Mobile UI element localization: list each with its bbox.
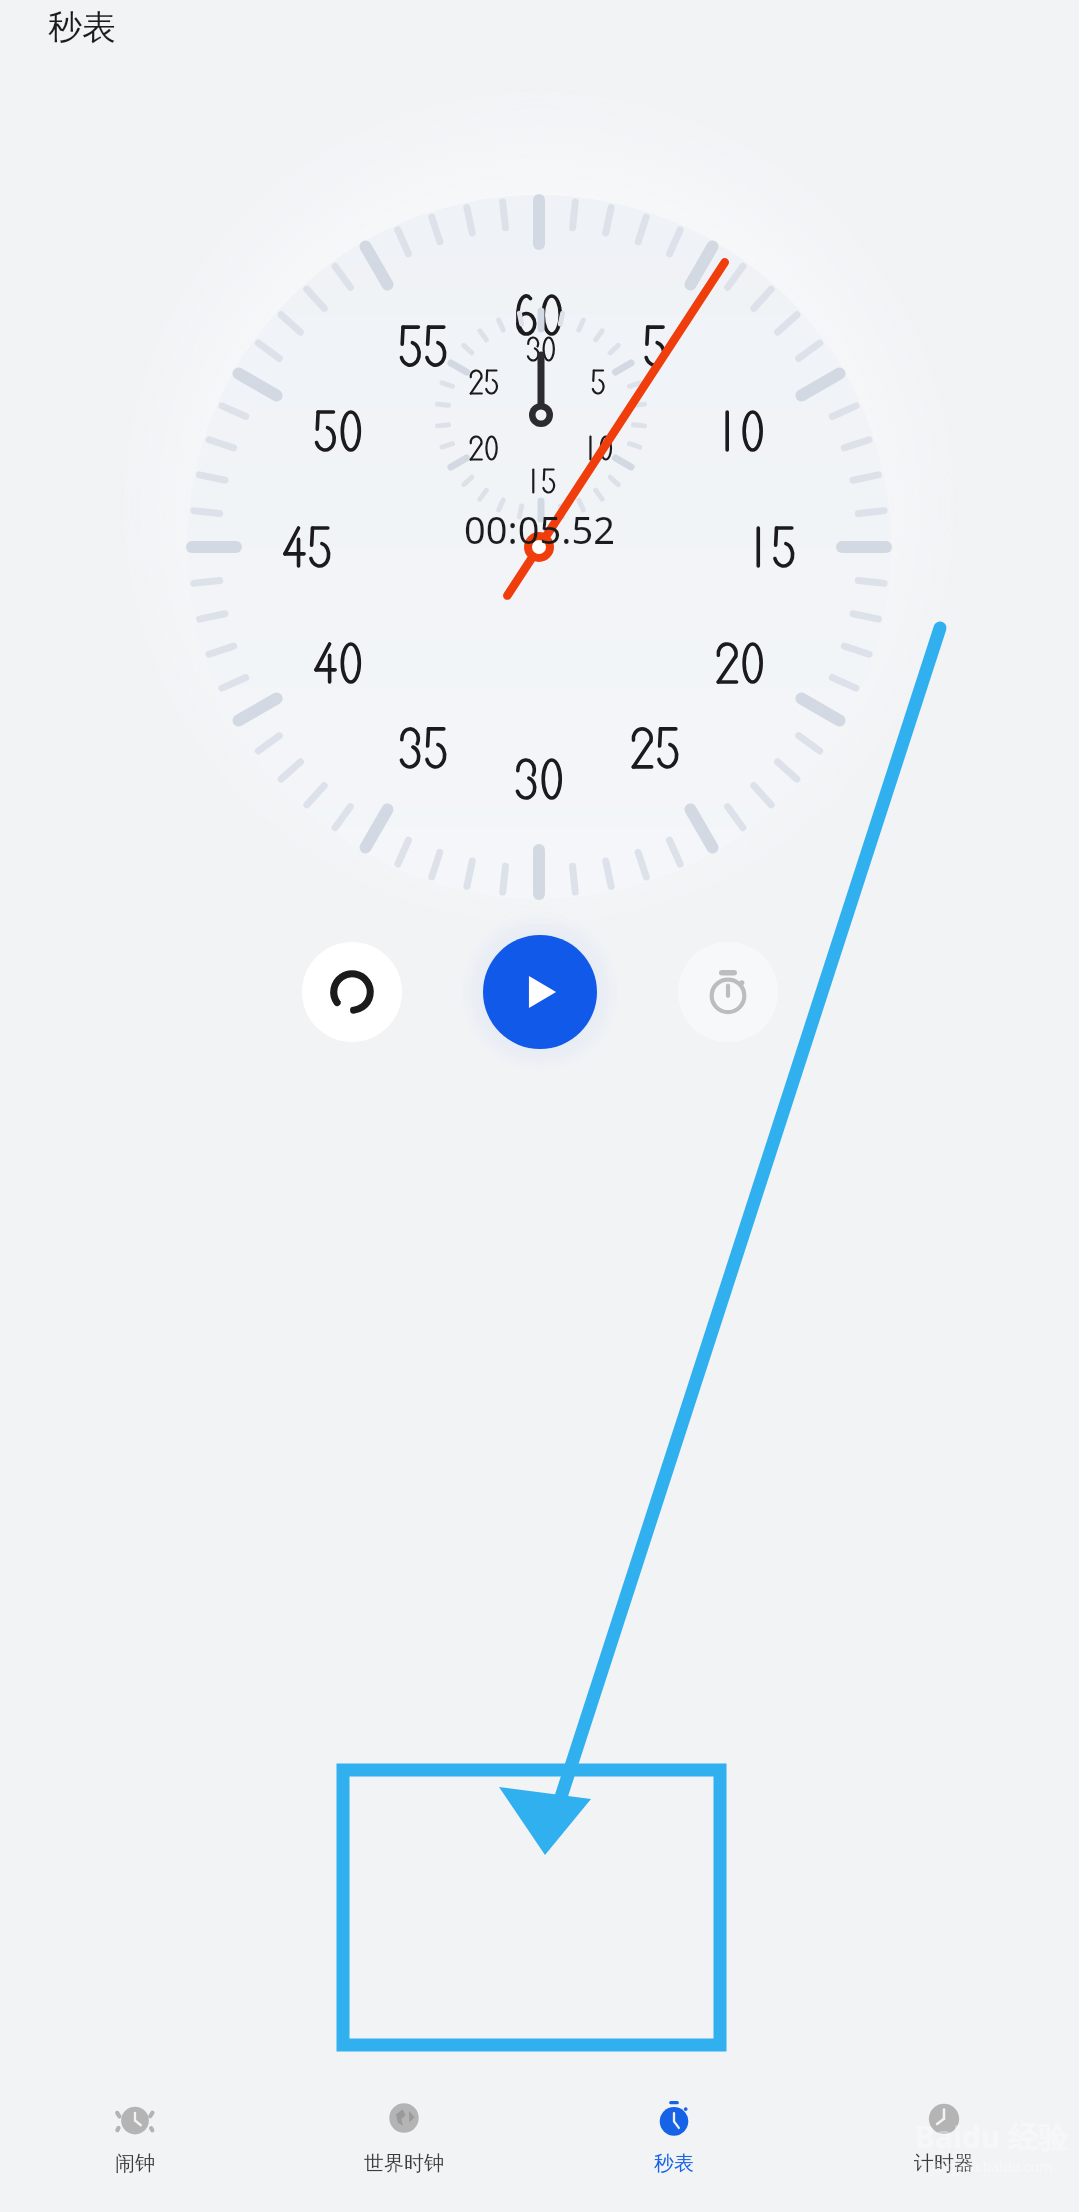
staticText: 秒表 [48,6,116,49]
button[interactable]: Lap [678,942,778,1042]
button[interactable]: Start [483,935,597,1049]
button[interactable]: Reset [302,942,402,1042]
button[interactable]: 计时器 [809,2060,1079,2212]
staticText: 计时器 [914,2151,974,2176]
staticText: 秒表 [654,2151,694,2176]
staticText: 世界时钟 [364,2151,444,2176]
staticText: jingyan.baidu.com [931,2157,1053,2176]
button[interactable]: 闹钟 [0,2060,269,2212]
staticText: Baidu 经验 [915,2116,1069,2157]
staticText: 闹钟 [115,2151,155,2176]
staticText: 00:05.52 [464,503,615,555]
button[interactable]: 秒表 [539,2060,809,2212]
button[interactable]: 世界时钟 [269,2060,539,2212]
